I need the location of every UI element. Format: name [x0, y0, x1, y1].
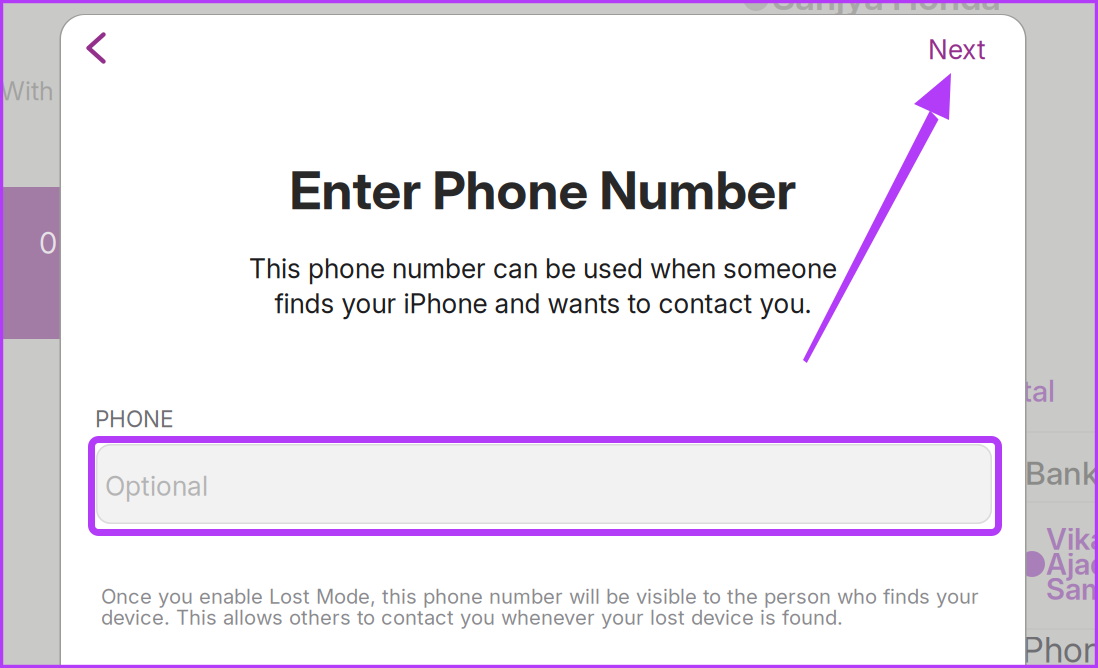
staticText: Vika	[1046, 521, 1098, 557]
staticText: device. This allows others to contact yo…	[101, 605, 843, 630]
staticText: Enter Phone Number	[289, 158, 796, 222]
staticText: Sam	[1046, 571, 1098, 607]
staticText: Sanjya Honda	[772, 0, 1001, 19]
staticText: Ajad	[1046, 546, 1098, 582]
staticText: PHONE	[95, 405, 174, 433]
staticText: Once you enable Lost Mode, this phone nu…	[101, 584, 979, 609]
button[interactable]: Back	[65, 19, 127, 77]
staticText: With Y	[0, 76, 78, 106]
staticText: tal	[1022, 373, 1055, 409]
staticText: Next	[928, 33, 986, 66]
staticText: finds your iPhone and wants to contact y…	[274, 287, 811, 320]
staticText: Phone	[1022, 629, 1098, 668]
staticText: Optional	[105, 470, 208, 502]
staticText: Bank	[1025, 454, 1098, 492]
staticText: 0	[39, 225, 57, 261]
button[interactable]: Next	[900, 23, 986, 75]
staticText: This phone number can be used when someo…	[249, 252, 837, 285]
button[interactable]: Optional	[96, 444, 992, 524]
